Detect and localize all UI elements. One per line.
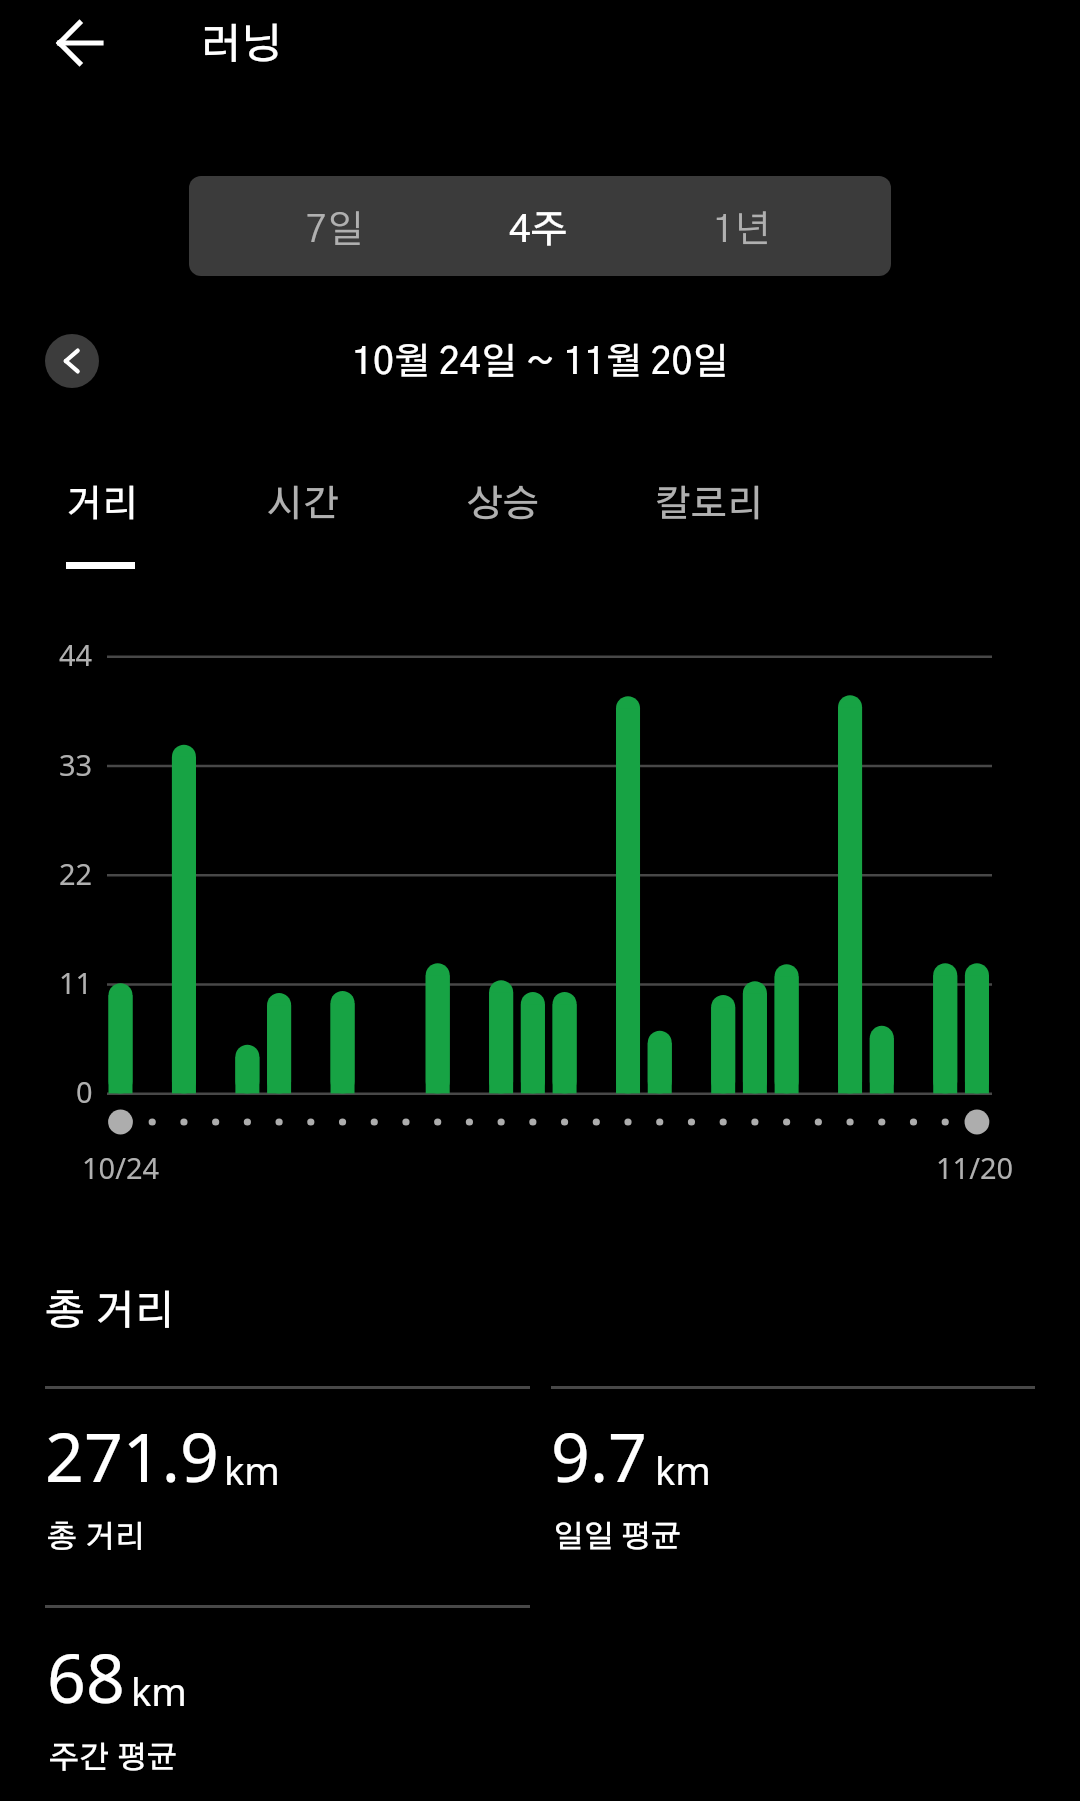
- staticText: 거리: [66, 486, 138, 523]
- staticText: 44: [59, 635, 93, 674]
- staticText: 러닝: [200, 24, 282, 66]
- staticText: 11: [59, 963, 93, 1002]
- button[interactable]: 7일: [235, 181, 435, 276]
- button[interactable]: Previous period: [45, 334, 99, 388]
- staticText: 총 거리: [45, 1291, 175, 1332]
- staticText: 271.9: [45, 1409, 219, 1502]
- staticText: 68: [47, 1630, 125, 1723]
- staticText: 칼로리: [655, 486, 763, 523]
- staticText: 11/20: [936, 1148, 1014, 1187]
- staticText: km: [655, 1444, 711, 1496]
- staticText: 4주: [509, 212, 568, 250]
- button[interactable]: 거리: [44, 460, 159, 580]
- staticText: 22: [59, 854, 93, 893]
- staticText: 10월 24일 ~ 11월 20일: [352, 344, 729, 381]
- button[interactable]: 4주: [438, 181, 638, 276]
- staticText: 주간 평균: [49, 1743, 178, 1774]
- staticText: 1년: [713, 212, 771, 250]
- staticText: 상승: [467, 486, 539, 523]
- staticText: 33: [59, 745, 93, 784]
- staticText: 시간: [267, 486, 339, 523]
- button[interactable]: 상승: [445, 460, 560, 580]
- staticText: 10/24: [82, 1148, 160, 1187]
- button[interactable]: 칼로리: [633, 460, 783, 580]
- staticText: 일일 평균: [553, 1522, 682, 1553]
- button[interactable]: 시간: [245, 460, 360, 580]
- staticText: km: [224, 1444, 280, 1496]
- staticText: 7일: [306, 212, 364, 250]
- button[interactable]: 1년: [642, 181, 842, 276]
- staticText: 총 거리: [47, 1522, 146, 1553]
- staticText: 9.7: [551, 1409, 648, 1502]
- button[interactable]: Back: [32, 0, 127, 90]
- staticText: km: [131, 1665, 187, 1717]
- staticText: 0: [76, 1072, 93, 1111]
